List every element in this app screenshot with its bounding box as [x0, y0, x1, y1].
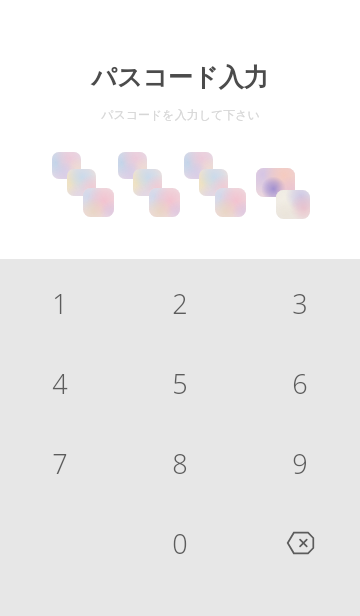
button[interactable]: 5 [120, 343, 240, 423]
button[interactable]: 9 [240, 423, 360, 503]
staticText: 6 [292, 365, 308, 402]
button[interactable]: 8 [120, 423, 240, 503]
button[interactable]: 2 [120, 263, 240, 343]
staticText: 3 [292, 285, 308, 322]
button[interactable]: 4 [0, 343, 120, 423]
staticText: 0 [172, 525, 188, 562]
staticText: パスコードを入力して下さい [101, 107, 260, 122]
staticText: 2 [172, 285, 188, 322]
staticText: 4 [52, 365, 68, 402]
staticText: 7 [52, 445, 68, 482]
button[interactable]: 1 [0, 263, 120, 343]
button[interactable]: 7 [0, 423, 120, 503]
staticText: 5 [172, 365, 188, 402]
staticText: 8 [172, 445, 188, 482]
staticText: 1 [52, 285, 68, 322]
button[interactable]: 0 [120, 503, 240, 583]
staticText: 9 [292, 445, 308, 482]
staticText: パスコード入力 [91, 62, 269, 93]
button[interactable]: Backspace [240, 503, 360, 583]
button[interactable]: 6 [240, 343, 360, 423]
button[interactable]: 3 [240, 263, 360, 343]
